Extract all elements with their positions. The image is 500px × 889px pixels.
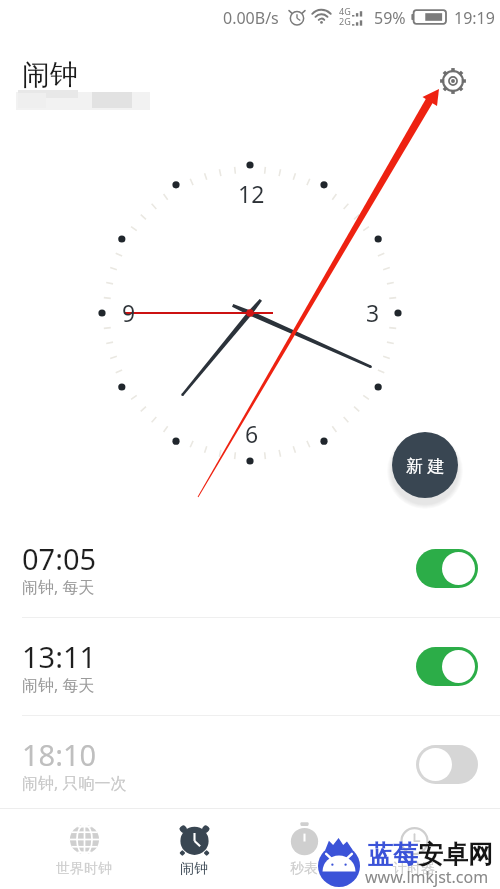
staticText: 59% (374, 7, 406, 29)
staticText: 安卓网 (418, 839, 493, 870)
button[interactable]: 闹钟 (139, 809, 249, 887)
staticText: 2G (339, 15, 351, 27)
staticText: 6 (245, 418, 259, 449)
button[interactable]: 18:10 (0, 716, 500, 813)
staticText: 12 (238, 178, 265, 209)
staticText: 蓝莓 (368, 839, 418, 870)
button[interactable]: 世界时钟 (29, 809, 139, 887)
staticText: 9 (122, 297, 136, 328)
staticText: 闹钟, 只响一次 (22, 772, 127, 794)
button[interactable]: Alarm on (416, 647, 478, 686)
staticText: 13:11 (22, 637, 97, 676)
button[interactable]: 秒表 (249, 809, 359, 887)
staticText: 世界时钟 (56, 860, 112, 878)
staticText: 秒表 (290, 860, 318, 878)
staticText: 18:10 (22, 735, 97, 774)
staticText: 闹钟, 每天 (22, 576, 95, 598)
button[interactable]: Settings (435, 63, 471, 99)
staticText: 计时器 (393, 860, 435, 878)
staticText: 0.00B/s (223, 7, 279, 29)
staticText: 闹钟, 每天 (22, 674, 95, 696)
button[interactable]: 计时器 (359, 809, 469, 887)
staticText: 闹钟 (22, 57, 78, 92)
staticText: 19:19 (454, 7, 495, 29)
button[interactable]: 07:05 (0, 520, 500, 617)
staticText: 新 建 (406, 454, 445, 477)
staticText: 07:05 (22, 539, 97, 578)
staticText: 闹钟 (180, 860, 208, 878)
button[interactable]: 13:11 (0, 618, 500, 715)
button[interactable]: Alarm on (416, 549, 478, 588)
staticText: 4G (339, 5, 351, 17)
button[interactable]: 新 建 (392, 432, 458, 498)
button[interactable]: Alarm off (416, 745, 478, 784)
staticText: www.lmkjst.com (365, 866, 489, 888)
staticText: 3 (366, 297, 380, 328)
